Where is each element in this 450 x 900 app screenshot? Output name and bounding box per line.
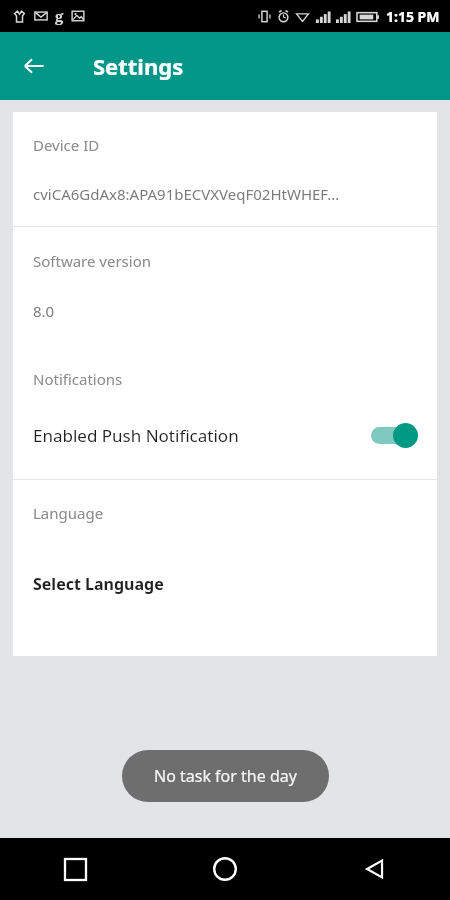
button[interactable]: Enabled Push Notification [13,415,437,455]
staticText: 8.0 [33,301,55,321]
staticText: Enabled Push Notification [33,424,239,447]
staticText: No task for the day [154,765,297,787]
staticText: Notifications [33,369,123,389]
staticText: Language [33,503,104,523]
staticText: Software version [33,251,152,271]
button[interactable]: Home [150,838,300,900]
staticText: Settings [93,51,184,81]
button[interactable]: Back [14,46,54,86]
staticText: Select Language [33,573,164,595]
staticText: g [55,6,64,26]
button[interactable]: Enabled Push Notification toggle [367,420,419,450]
button[interactable]: No task for the day [122,750,329,802]
button[interactable]: Recent apps [0,838,150,900]
staticText: Device ID [33,135,100,155]
button[interactable]: Back [300,838,450,900]
staticText: cviCA6GdAx8:APA91bECVXVeqF02HtWHEF… [33,184,340,204]
staticText: 1:15 PM [386,7,440,26]
button[interactable]: Select Language [13,571,437,597]
